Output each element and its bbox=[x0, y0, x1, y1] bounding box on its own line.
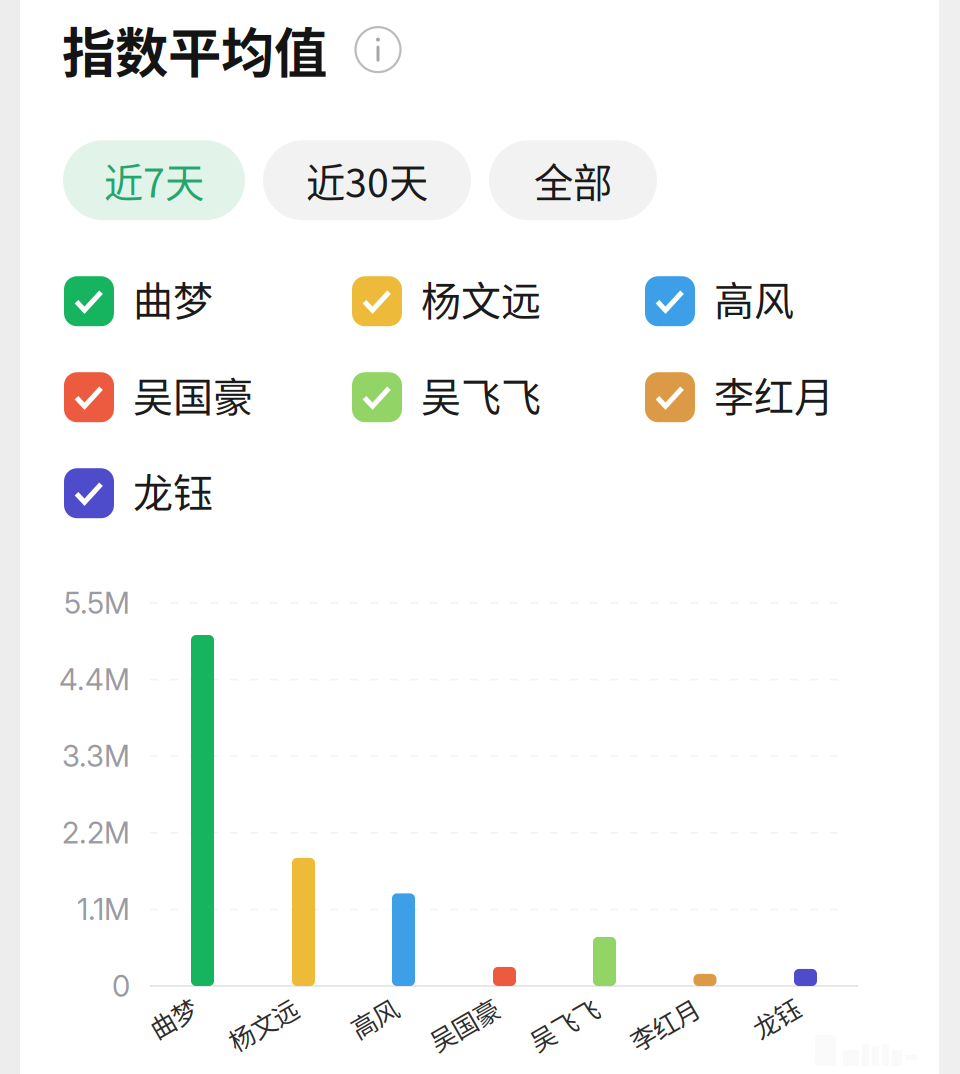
staticText: 龙钰 bbox=[133, 461, 213, 519]
staticText: 曲梦 bbox=[133, 269, 213, 327]
button[interactable]: 近7天 bbox=[63, 140, 245, 220]
button[interactable]: 近30天 bbox=[263, 140, 471, 220]
button[interactable]: 李红月 bbox=[645, 372, 933, 422]
staticText: 高风 bbox=[714, 269, 794, 327]
button[interactable]: 吴飞飞 bbox=[352, 372, 645, 422]
staticText: 3.3M bbox=[62, 738, 130, 774]
button[interactable]: 曲梦 bbox=[64, 276, 352, 326]
staticText: 李红月 bbox=[714, 365, 834, 423]
staticText: 高风 bbox=[349, 999, 399, 1036]
staticText: 李红月 bbox=[627, 1006, 702, 1042]
button[interactable]: 杨文远 bbox=[352, 276, 645, 326]
staticText: 1.1M bbox=[77, 892, 130, 927]
staticText: 5.5M bbox=[64, 585, 130, 621]
staticText: 吴飞飞 bbox=[526, 1006, 601, 1042]
staticText: 曲梦 bbox=[148, 999, 198, 1036]
staticText: 吴国豪 bbox=[426, 1006, 501, 1042]
button[interactable]: 全部 bbox=[489, 140, 657, 220]
staticText: 龙钰 bbox=[751, 999, 801, 1036]
staticText: 杨文远 bbox=[225, 1006, 300, 1042]
staticText: 近7天 bbox=[104, 152, 204, 209]
staticText: 吴国豪 bbox=[133, 365, 253, 423]
staticText: 0 bbox=[112, 968, 130, 1004]
button[interactable]: 龙钰 bbox=[64, 468, 352, 518]
staticText: 2.2M bbox=[62, 815, 130, 851]
staticText: 指数平均值 bbox=[62, 11, 327, 88]
staticText: 全部 bbox=[534, 152, 612, 209]
staticText: 杨文远 bbox=[421, 269, 541, 327]
button[interactable]: 说明 bbox=[354, 26, 402, 74]
staticText: 4.4M bbox=[59, 662, 130, 697]
staticText: 吴飞飞 bbox=[421, 365, 541, 423]
button[interactable]: 吴国豪 bbox=[64, 372, 352, 422]
staticText: 近30天 bbox=[306, 152, 428, 209]
button[interactable]: 高风 bbox=[645, 276, 933, 326]
